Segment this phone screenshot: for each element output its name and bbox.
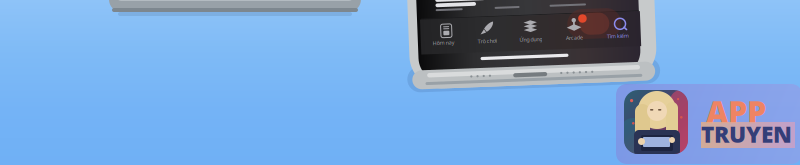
staticText: TRUYEN: [701, 119, 792, 149]
staticText: Ứng dụng: [518, 36, 541, 43]
staticText: APP: [706, 91, 766, 132]
button[interactable]: Ứng dụng: [508, 16, 552, 46]
button[interactable]: Trò chơi: [465, 16, 508, 46]
button[interactable]: Tìm kiếm: [595, 16, 639, 46]
staticText: Tìm kiếm: [606, 36, 628, 43]
staticText: Arcade: [565, 36, 582, 43]
button[interactable]: Arcade: [552, 16, 595, 46]
staticText: Hôm nay: [432, 36, 454, 43]
staticText: Trò chơi: [477, 36, 496, 43]
button[interactable]: Hôm nay: [421, 16, 465, 46]
